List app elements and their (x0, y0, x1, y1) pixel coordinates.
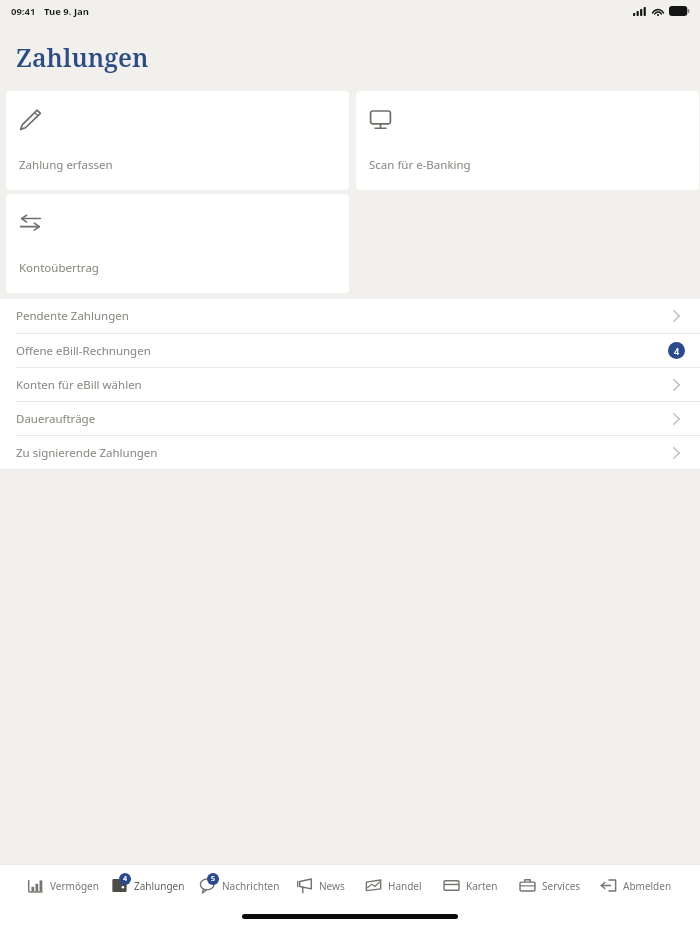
staticText: Nachrichten (222, 879, 280, 893)
button[interactable]: Abmelden (591, 864, 680, 907)
staticText: Konten für eBill wählen (16, 377, 142, 393)
button[interactable]: Vermögen (20, 864, 104, 907)
button[interactable]: Scan für e-Banking (356, 91, 699, 190)
staticText: Zahlungen (16, 40, 149, 74)
staticText: 09:41 (11, 5, 36, 18)
staticText: Kontoübertrag (19, 260, 99, 276)
other: Abmelden (600, 877, 617, 894)
button[interactable]: Kontoübertrag (6, 194, 349, 293)
other: Zahlungen (111, 877, 128, 894)
staticText: Zahlung erfassen (19, 157, 113, 173)
staticText: Scan für e-Banking (369, 157, 471, 173)
staticText: Handel (388, 879, 422, 893)
staticText: Zu signierende Zahlungen (16, 445, 158, 461)
staticText: 5 (211, 874, 216, 884)
button[interactable]: Handel (354, 864, 431, 907)
button[interactable]: Services (508, 864, 591, 907)
staticText: Vermögen (50, 879, 99, 893)
staticText: Zahlungen (134, 879, 185, 893)
button[interactable]: Zahlung erfassen (6, 91, 349, 190)
button[interactable]: Konten für eBill wählen (0, 367, 700, 401)
button[interactable]: News (286, 864, 354, 907)
button[interactable]: Nachrichten (191, 864, 286, 907)
other: Services (519, 877, 536, 894)
other: News (296, 877, 313, 894)
staticText: 4 (123, 874, 128, 884)
button[interactable]: Daueraufträge (0, 401, 700, 435)
staticText: News (319, 879, 345, 893)
staticText: Services (542, 879, 581, 893)
staticText: Tue 9. Jan (44, 5, 89, 18)
other: Karten (443, 877, 460, 894)
staticText: Pendente Zahlungen (16, 308, 129, 324)
staticText: Daueraufträge (16, 411, 96, 427)
button[interactable]: Zu signierende Zahlungen (0, 435, 700, 469)
button[interactable]: Offene eBill-Rechnungen (0, 333, 700, 367)
staticText: Abmelden (623, 879, 672, 893)
button[interactable]: Zahlungen (104, 864, 191, 907)
staticText: Offene eBill-Rechnungen (16, 343, 151, 359)
staticText: 4 (674, 345, 680, 357)
staticText: Karten (466, 879, 498, 893)
other: Vermögen (27, 877, 44, 894)
other: Handel (365, 877, 382, 894)
button[interactable]: Pendente Zahlungen (0, 299, 700, 333)
other: Nachrichten (199, 877, 216, 894)
button[interactable]: Karten (431, 864, 508, 907)
